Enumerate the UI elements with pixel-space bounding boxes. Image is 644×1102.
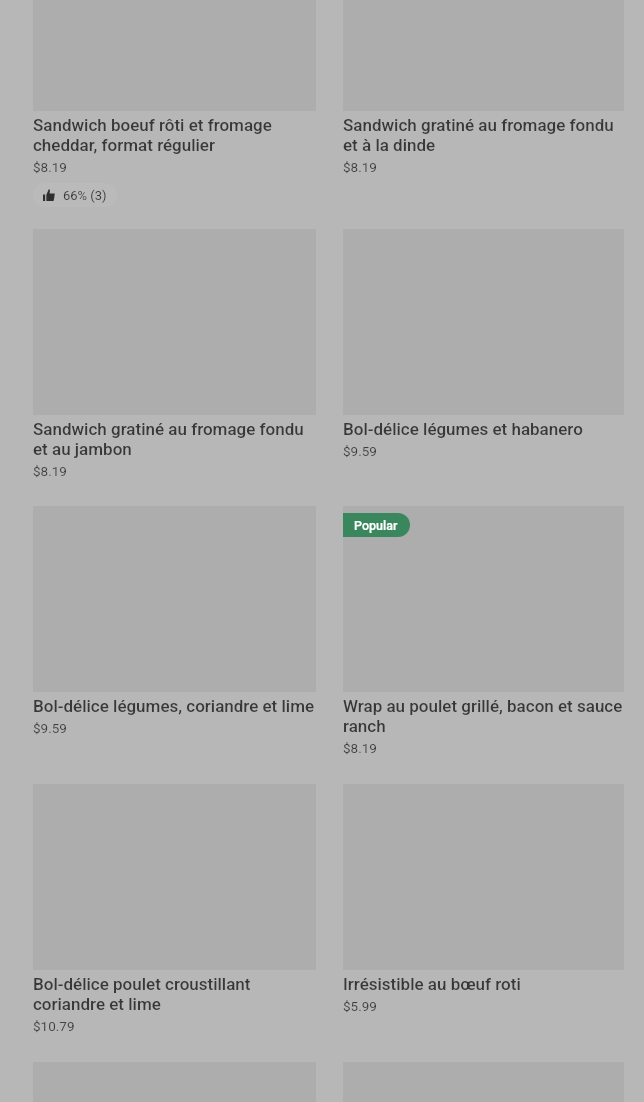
button[interactable]: Popular — [343, 506, 631, 756]
staticText: $8.19 — [33, 463, 67, 479]
button[interactable]: Bol-délice poulet croustillant coriandre… — [33, 784, 321, 1034]
staticText: Irrésistible au bœuf roti — [343, 975, 521, 995]
staticText: $10.79 — [33, 1018, 75, 1034]
staticText: Bol-délice poulet croustillant coriandre… — [33, 975, 321, 1015]
button[interactable]: Bol-délice légumes, coriandre et lime — [33, 506, 321, 736]
staticText: Bol-délice légumes et habanero — [343, 420, 583, 440]
staticText: Sandwich boeuf rôti et fromage cheddar, … — [33, 116, 321, 156]
staticText: Wrap au poulet grillé, bacon et sauce ra… — [343, 697, 631, 737]
staticText: 66% (3) — [63, 188, 107, 203]
button[interactable]: 66% (3) — [33, 183, 117, 207]
staticText: $9.59 — [343, 443, 377, 459]
staticText: $8.19 — [33, 159, 67, 175]
button[interactable]: Sandwich gratiné au fromage fondu et à l… — [343, 0, 631, 175]
staticText: $5.99 — [343, 998, 377, 1014]
button[interactable]: Irrésistible au bœuf roti — [343, 784, 631, 1014]
staticText: $9.59 — [33, 720, 67, 736]
staticText: Sandwich gratiné au fromage fondu et à l… — [343, 116, 631, 156]
button[interactable]: Sandwich gratiné au fromage fondu et au … — [33, 229, 321, 479]
button[interactable]: Sandwich boeuf rôti et fromage cheddar, … — [33, 0, 321, 207]
staticText: $8.19 — [343, 159, 377, 175]
staticText: Sandwich gratiné au fromage fondu et au … — [33, 420, 321, 460]
staticText: $8.19 — [343, 740, 377, 756]
staticText: Popular — [354, 518, 398, 533]
staticText: Bol-délice légumes, coriandre et lime — [33, 697, 315, 717]
button[interactable]: Bol-délice légumes et habanero — [343, 229, 631, 459]
